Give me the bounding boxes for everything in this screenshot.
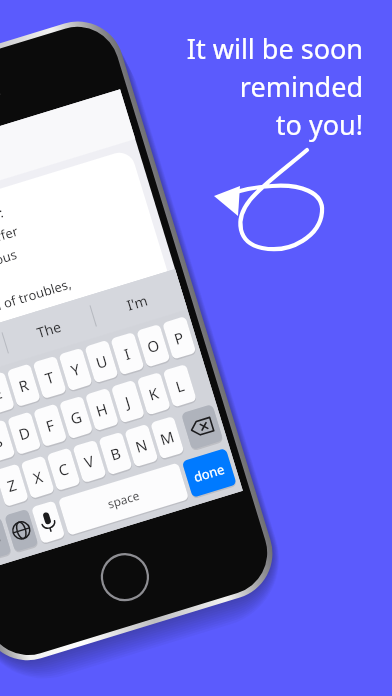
button[interactable]: Phone mockup showing reminder keyboard xyxy=(0,0,392,696)
other: Phone mockup showing reminder keyboard xyxy=(0,0,392,696)
